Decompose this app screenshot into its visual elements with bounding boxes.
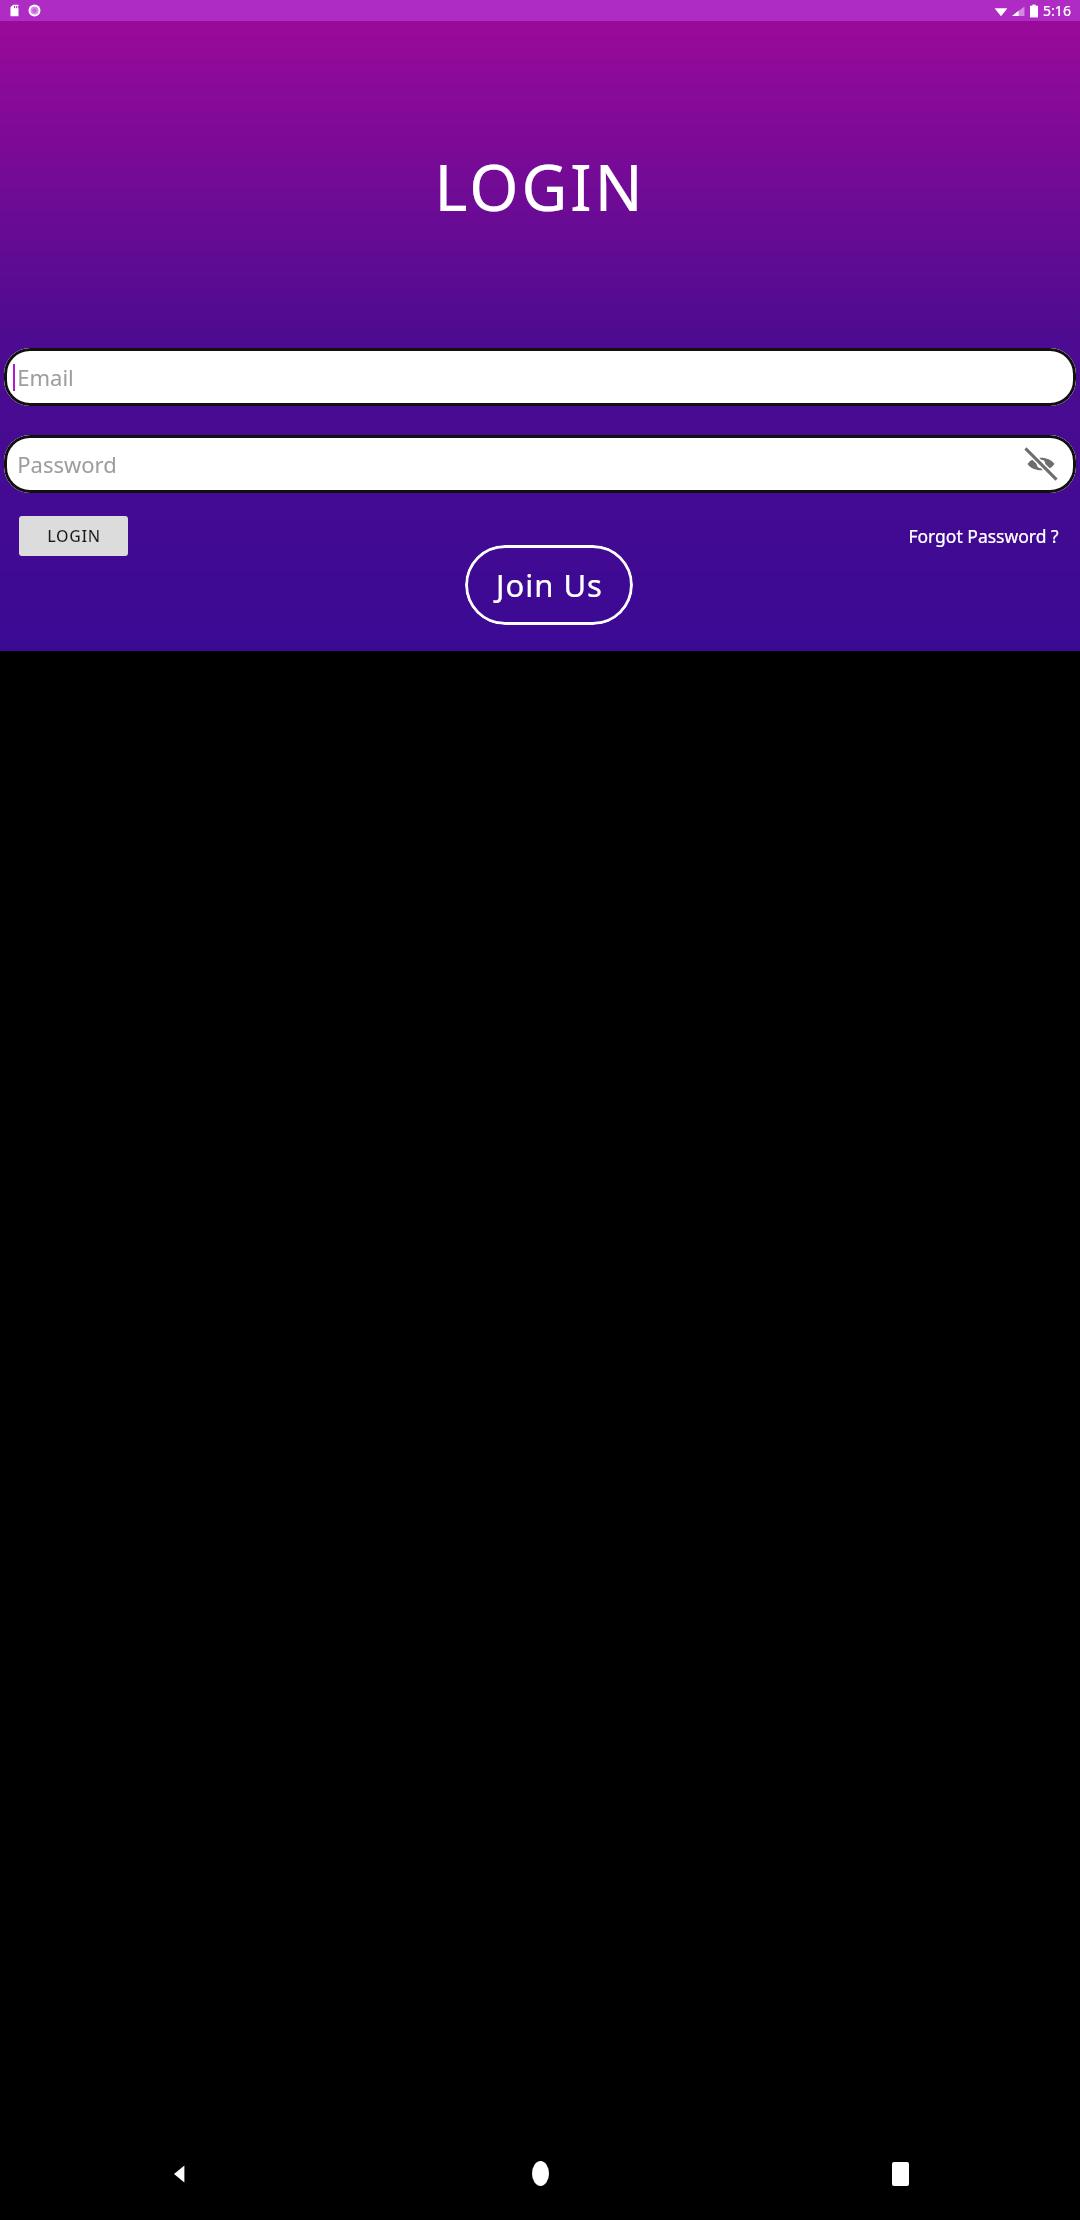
staticText: 5:16 xyxy=(1043,1,1071,20)
button[interactable]: Recent apps xyxy=(720,2127,1080,2220)
button[interactable]: Join Us xyxy=(465,545,633,625)
button[interactable]: Back xyxy=(0,2127,360,2220)
button[interactable]: Toggle password visibility xyxy=(1024,447,1058,481)
staticText: LOGIN xyxy=(434,144,646,230)
button[interactable]: Password xyxy=(4,435,1076,493)
button[interactable]: Home xyxy=(360,2127,720,2220)
staticText: LOGIN xyxy=(47,525,101,547)
button[interactable]: Forgot Password ? xyxy=(908,524,1059,548)
staticText: Join Us xyxy=(496,564,603,606)
button[interactable]: LOGIN xyxy=(19,516,128,556)
button[interactable]: Email xyxy=(4,348,1076,406)
staticText: Password xyxy=(17,449,117,479)
staticText: Forgot Password ? xyxy=(908,524,1059,548)
staticText: Email xyxy=(17,362,74,392)
